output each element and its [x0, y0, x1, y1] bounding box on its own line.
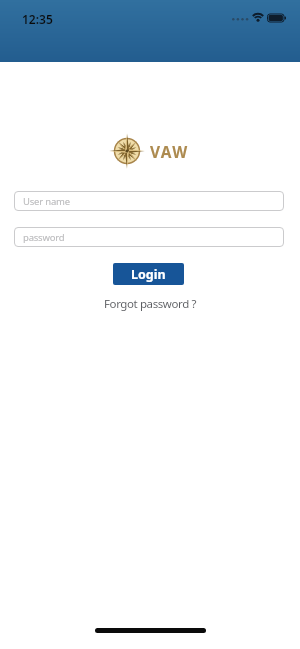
button[interactable]: User name — [14, 191, 284, 211]
staticText: password — [23, 231, 65, 244]
button[interactable]: Login — [113, 263, 184, 285]
staticText: VAW — [150, 141, 189, 162]
staticText: User name — [23, 195, 70, 208]
staticText: Login — [131, 266, 166, 283]
button[interactable]: Forgot password ? — [104, 296, 197, 312]
staticText: 12:35 — [22, 11, 53, 27]
button[interactable]: password — [14, 227, 284, 247]
